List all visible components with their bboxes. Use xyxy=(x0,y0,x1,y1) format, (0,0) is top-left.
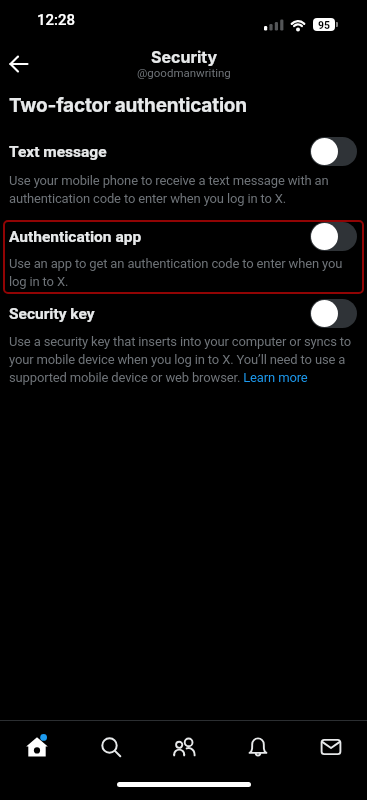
button[interactable] xyxy=(74,721,148,773)
button[interactable] xyxy=(0,721,74,773)
staticText: Security key xyxy=(9,305,95,323)
staticText: Use your mobile phone to receive a text … xyxy=(9,173,329,206)
staticText: Text message xyxy=(9,143,107,161)
staticText: 12:28 xyxy=(37,11,76,29)
button[interactable] xyxy=(310,222,357,251)
staticText: @goodmanwriting xyxy=(137,66,231,79)
button[interactable] xyxy=(221,721,294,773)
button[interactable]: Security key xyxy=(0,299,367,328)
staticText: Two-factor authentication xyxy=(9,94,247,117)
button[interactable] xyxy=(294,721,367,773)
staticText: Use an app to get an authentication code… xyxy=(9,256,343,289)
button[interactable] xyxy=(310,137,357,166)
staticText: Use a security key that inserts into you… xyxy=(9,334,352,385)
staticText: Security xyxy=(151,47,218,66)
staticText: Authentication app xyxy=(9,228,142,246)
staticText: 95 xyxy=(318,19,331,31)
button[interactable] xyxy=(9,54,29,74)
button[interactable]: Authentication app xyxy=(3,220,364,294)
button[interactable] xyxy=(310,299,357,328)
button[interactable]: Text message xyxy=(0,137,367,166)
button[interactable] xyxy=(148,721,221,773)
